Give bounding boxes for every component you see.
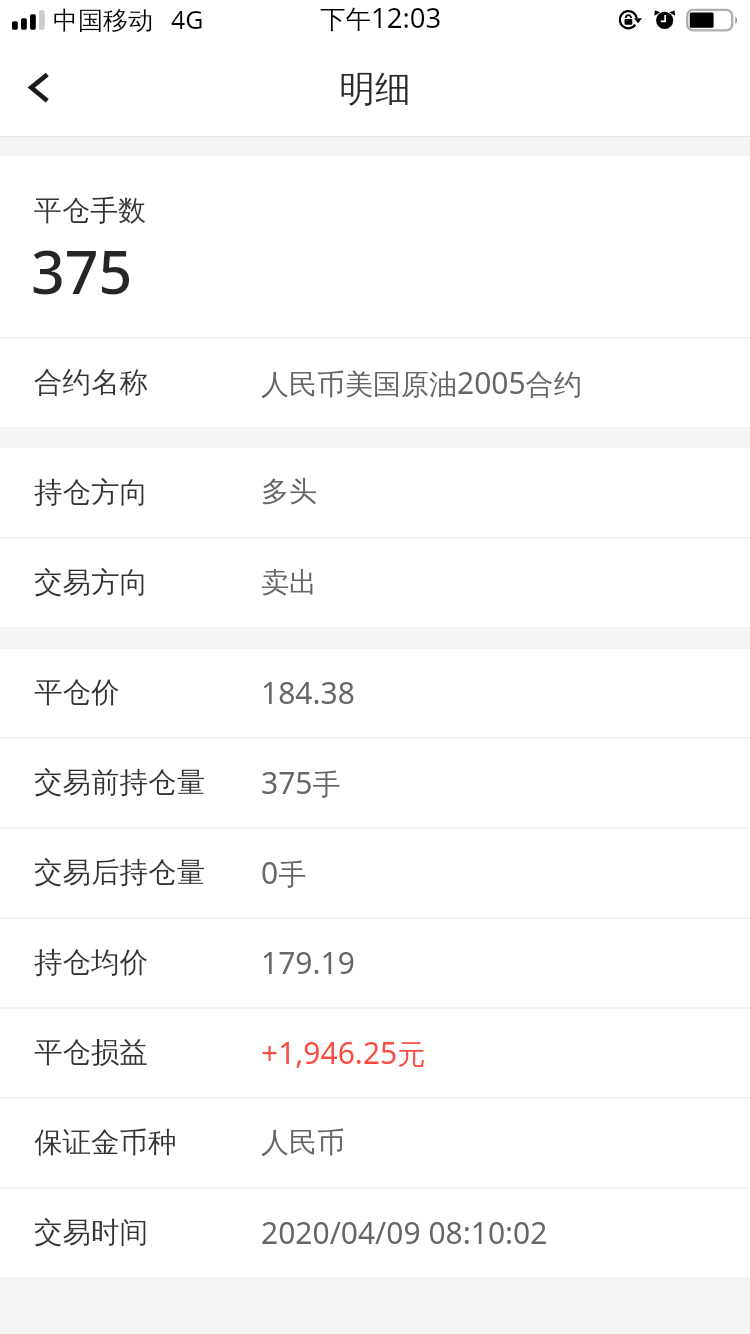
button[interactable]: 持仓均价 <box>0 919 750 1007</box>
staticText: 持仓均价 <box>34 945 148 981</box>
staticText: 交易时间 <box>34 1215 148 1251</box>
button[interactable]: 交易后持仓量 <box>0 829 750 917</box>
staticText: 人民币 <box>261 1125 345 1160</box>
button[interactable]: 持仓方向 <box>0 448 750 537</box>
button[interactable]: 合约名称 <box>0 339 750 427</box>
staticText: 2020/04/09 08:10:02 <box>261 1212 548 1253</box>
staticText: 平仓价 <box>34 675 120 711</box>
staticText: +1,946.25元 <box>261 1032 426 1073</box>
staticText: 交易后持仓量 <box>34 855 205 891</box>
staticText: 多头 <box>261 474 317 509</box>
button[interactable]: 交易方向 <box>0 539 750 627</box>
staticText: 中国移动 <box>53 5 153 36</box>
staticText: 卖出 <box>261 565 317 600</box>
staticText: 合约名称 <box>34 365 148 401</box>
button[interactable]: 平仓损益 <box>0 1009 750 1097</box>
staticText: 375手 <box>261 762 341 803</box>
staticText: 0手 <box>261 852 307 893</box>
button[interactable]: 交易前持仓量 <box>0 739 750 827</box>
button[interactable]: 平仓价 <box>0 649 750 737</box>
staticText: 交易前持仓量 <box>34 765 205 801</box>
staticText: 下午12:03 <box>320 0 442 36</box>
staticText: 4G <box>171 2 204 36</box>
staticText: 持仓方向 <box>34 475 148 511</box>
staticText: 179.19 <box>261 942 355 983</box>
staticText: 平仓手数 <box>34 193 146 228</box>
staticText: 人民币美国原油2005合约 <box>261 362 582 403</box>
staticText: 保证金币种 <box>34 1125 177 1161</box>
staticText: 明细 <box>339 66 411 111</box>
staticText: 375 <box>31 231 133 311</box>
staticText: 平仓损益 <box>34 1035 148 1071</box>
staticText: 184.38 <box>261 672 355 713</box>
button[interactable]: 交易时间 <box>0 1189 750 1277</box>
staticText: 交易方向 <box>34 565 148 601</box>
button[interactable]: 保证金币种 <box>0 1099 750 1187</box>
button[interactable]: Back <box>0 48 80 136</box>
